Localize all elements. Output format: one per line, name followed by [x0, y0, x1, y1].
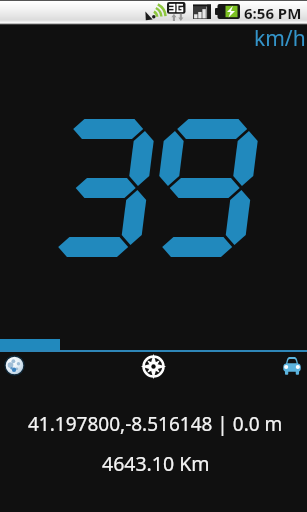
button[interactable]: Map: [2, 353, 26, 377]
staticText: 41.197800,-8.516148 | 0.0 m: [28, 411, 283, 437]
staticText: km/h: [254, 24, 306, 53]
staticText: 4643.10 Km: [102, 450, 210, 477]
staticText: 6:56 PM: [244, 3, 302, 23]
button[interactable]: Car: [279, 352, 305, 378]
button[interactable]: Compass: [139, 352, 168, 381]
